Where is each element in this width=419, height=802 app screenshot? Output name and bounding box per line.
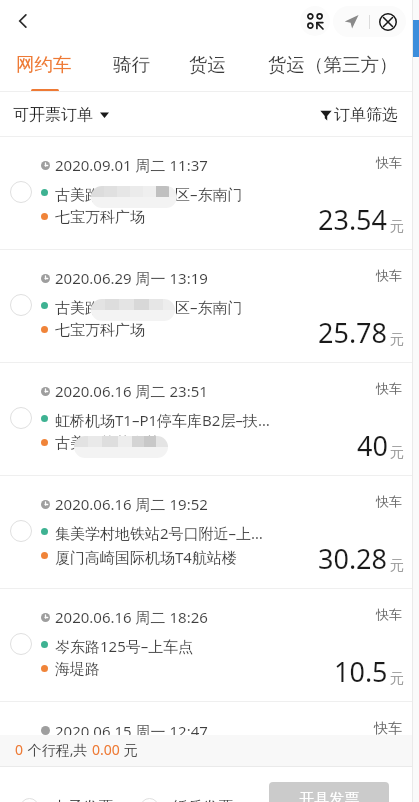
staticText: 集美学村地铁站2号口附近–上… <box>55 523 263 543</box>
button[interactable]: 货运 <box>175 42 240 91</box>
staticText: 2020.06.29 周一 13:19 <box>55 268 208 288</box>
button[interactable]: 2020.06.16 周二 23:51 <box>0 363 419 476</box>
staticText: 元 <box>390 218 404 236</box>
button[interactable]: 订单筛选 <box>320 105 398 125</box>
staticText: 2020.06.16 周二 18:26 <box>55 607 208 627</box>
staticText: 古美路莲花南苑小区–东南门 <box>55 297 243 317</box>
staticText: 23.54 <box>318 201 388 238</box>
button[interactable]: 2020.06.16 周二 18:26 <box>0 589 419 702</box>
staticText: 0.00 <box>92 740 120 759</box>
staticText: 骑行 <box>113 53 150 76</box>
staticText: 开具发票 <box>299 790 359 802</box>
button[interactable]: 电子发票 <box>20 798 113 802</box>
button[interactable]: 2020.09.01 周二 11:37 <box>0 137 419 250</box>
staticText: 可开票订单 <box>13 105 93 125</box>
staticText: 30.28 <box>318 540 388 577</box>
staticText: 0 <box>15 740 24 759</box>
button[interactable]: 2020.06.29 周一 13:19 <box>0 250 419 363</box>
staticText: 网约车 <box>16 53 72 76</box>
staticText: 电子发票 <box>53 798 113 802</box>
button[interactable]: Back <box>6 4 40 38</box>
staticText: 纸质发票 <box>173 798 233 802</box>
staticText: 七宝万科广场 <box>55 321 145 340</box>
staticText: 快车 <box>376 267 402 283</box>
button[interactable]: 货运（第三方） <box>245 42 419 91</box>
button[interactable]: 可开票订单 <box>13 105 109 125</box>
button[interactable]: Close <box>370 6 406 37</box>
staticText: 货运（第三方） <box>268 53 398 76</box>
staticText: 快车 <box>376 606 402 622</box>
staticText: 10.5 <box>334 653 388 690</box>
staticText: 厦门高崎国际机场T4航站楼 <box>55 547 237 567</box>
staticText: 元 <box>390 557 404 575</box>
staticText: 海堤路 <box>55 660 100 679</box>
staticText: 元 <box>390 670 404 688</box>
button[interactable]: 2020.06.15 周一 12:47 <box>0 702 419 735</box>
staticText: 虹桥机场T1–P1停车库B2层–扶… <box>55 410 270 430</box>
button[interactable]: 纸质发票 <box>140 798 233 802</box>
staticText: 岑东路125号–上车点 <box>55 636 194 656</box>
button[interactable]: 2020.06.16 周二 19:52 <box>0 476 419 589</box>
staticText: 七宝万科广场 <box>55 208 145 227</box>
staticText: 25.78 <box>318 314 388 351</box>
staticText: 个行程,共 <box>24 740 92 759</box>
staticText: 古美路莲花南苑 <box>55 434 160 453</box>
button[interactable]: 开具发票 <box>269 782 389 802</box>
button[interactable]: 网约车 <box>0 42 87 91</box>
staticText: 2020.09.01 周二 11:37 <box>55 155 208 175</box>
staticText: 40 <box>357 427 388 464</box>
button[interactable]: 骑行 <box>87 42 175 91</box>
staticText: 2020.06.15 周一 12:47 <box>55 721 208 741</box>
staticText: 快车 <box>376 154 402 170</box>
staticText: 2020.06.16 周二 19:52 <box>55 494 208 514</box>
staticText: 元 <box>120 740 138 759</box>
staticText: 快车 <box>376 380 402 396</box>
staticText: 2020.06.16 周二 23:51 <box>55 381 208 401</box>
staticText: 古美路莲花南苑小区–东南门 <box>55 184 243 204</box>
staticText: 快车 <box>376 493 402 509</box>
staticText: 快车 <box>374 720 402 738</box>
staticText: 元 <box>390 331 404 349</box>
staticText: 元 <box>390 444 404 462</box>
staticText: 货运 <box>189 53 226 76</box>
staticText: 订单筛选 <box>334 105 398 125</box>
button[interactable]: Location <box>333 6 369 37</box>
button[interactable]: Mini programs <box>300 6 330 36</box>
